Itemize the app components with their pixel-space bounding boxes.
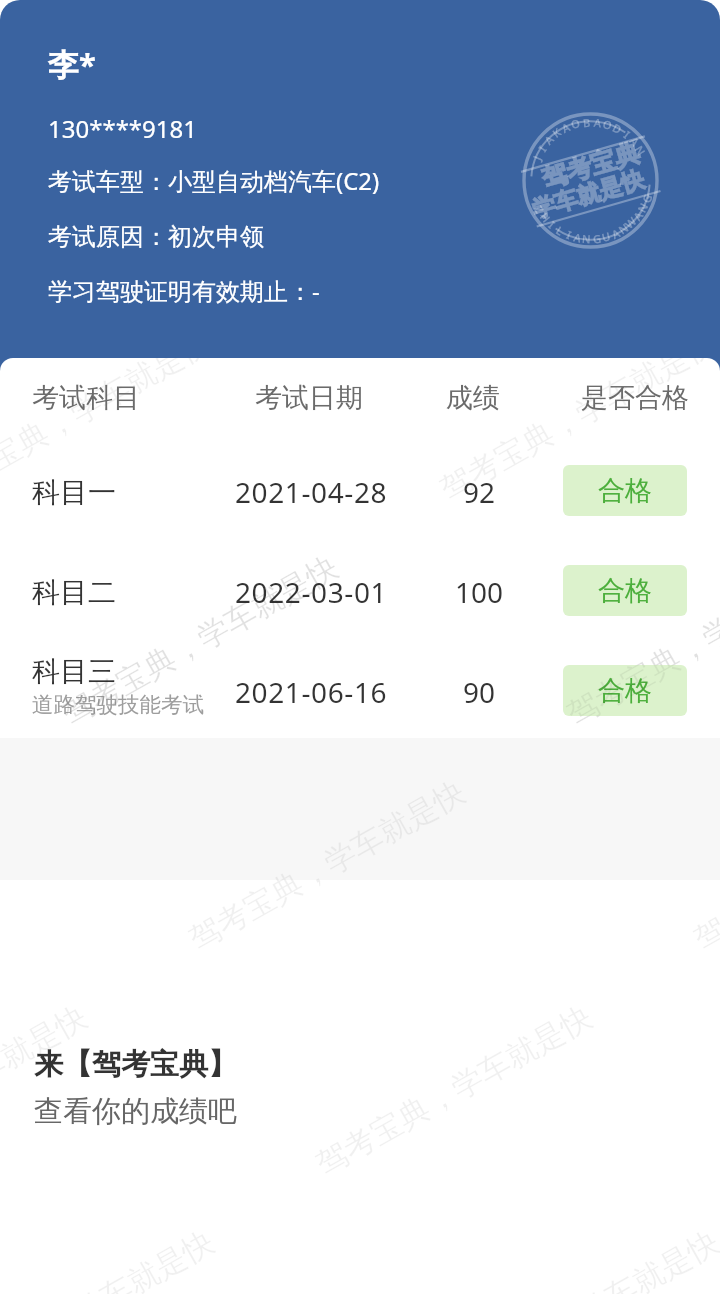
staticText: 驾考宝典，学车就是快 [182,772,472,959]
other: 驾考宝典 官网印章 [522,112,659,249]
button[interactable]: 合格 [563,465,687,516]
button[interactable]: 科目三 [0,642,720,738]
staticText: 考试车型：小型自动档汽车(C2) [48,164,380,197]
staticText: N [632,143,649,158]
staticText: 2021-04-28 [235,473,388,511]
staticText: N [634,200,651,215]
staticText: 90 [463,673,496,711]
staticText: A [572,229,583,246]
staticText: 考试日期 [255,381,363,415]
button[interactable]: 合格 [563,565,687,616]
staticText: 查看你的成绩吧 [34,1093,237,1130]
button[interactable]: 科目二 [0,542,720,642]
staticText: 科目一 [32,475,116,510]
staticText: Z [531,203,548,216]
staticText: I [621,127,633,142]
staticText: 130****9181 [48,112,197,145]
staticText: K [549,124,564,141]
button[interactable]: 合格 [563,665,687,716]
staticText: 驾考宝典，学车就是快 [560,547,720,734]
staticText: 驾考宝典，学车就是快 [55,547,345,734]
staticText: D [610,120,625,137]
staticText: W [621,213,640,232]
staticText: 驾考宝典，学车就是快 [560,547,720,734]
staticText: 李* [48,43,96,85]
staticText: 92 [463,473,496,511]
staticText: 学习驾驶证明有效期止：- [48,274,320,307]
staticText: O [569,115,582,132]
staticText: 是否合格 [581,381,689,415]
staticText: 道路驾驶技能考试 [32,691,204,718]
staticText: 2021-06-16 [235,673,388,711]
staticText: 驾考宝典，学车就是快 [55,547,345,734]
staticText: 考试原因：初次申领 [48,222,264,252]
staticText: L [553,222,566,238]
staticText: A [541,131,557,148]
staticText: N [582,231,591,246]
staticText: 学车就是快 [529,165,647,224]
staticText: 合格 [598,474,652,508]
staticText: G [592,231,602,246]
staticText: B [582,115,591,130]
staticText: A [609,225,623,242]
staticText: 考试科目 [32,381,140,415]
staticText: 科目二 [32,575,116,610]
staticText: 100 [455,573,504,611]
staticText: 驾考宝典，学车就是快 [0,997,94,1184]
staticText: I [564,227,574,242]
staticText: 合格 [598,574,652,608]
staticText: 驾考宝典，学车就是快 [0,358,218,509]
staticText: O [601,116,614,133]
button[interactable]: 来【驾考宝典】 [0,1030,720,1142]
staticText: J [529,153,545,162]
staticText: 2022-03-01 [235,573,388,611]
staticText: 驾考宝典，学车就是快 [433,358,720,509]
staticText: 科目三 [32,654,116,689]
staticText: 来【驾考宝典】 [34,1046,237,1083]
staticText: 驾考宝典 [538,137,643,194]
staticText: 驾考宝典，学车就是快 [687,772,720,959]
staticText: A [593,115,603,130]
staticText: A [559,119,573,136]
staticText: I [546,217,558,231]
staticText: N [616,220,631,237]
staticText: G [639,192,655,205]
staticText: A [630,208,646,223]
staticText: H [537,209,554,226]
staticText: U [600,228,613,245]
staticText: A [627,133,643,149]
staticText: I [535,143,549,154]
staticText: 成绩 [446,381,500,415]
staticText: 合格 [598,674,652,708]
button[interactable]: 科目一 [0,442,720,542]
